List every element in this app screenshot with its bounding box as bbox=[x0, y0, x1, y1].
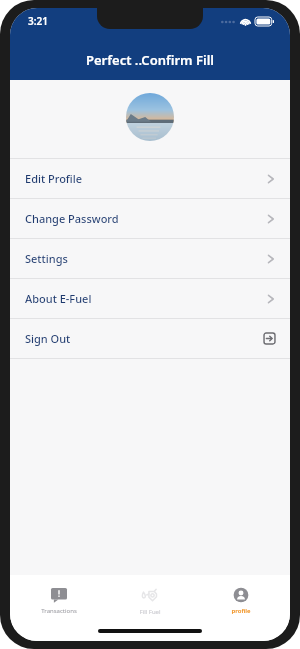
button[interactable]: Profile bbox=[199, 575, 283, 627]
staticText: Settings bbox=[25, 251, 68, 266]
staticText: Change Password bbox=[25, 211, 119, 226]
button[interactable]: Fill Fuel bbox=[108, 575, 192, 627]
button[interactable]: Sign Out bbox=[10, 319, 290, 358]
other: Profile bbox=[233, 587, 249, 603]
staticText: profile bbox=[231, 607, 251, 615]
staticText: About E-Fuel bbox=[25, 291, 92, 306]
button[interactable]: Edit Profile bbox=[10, 159, 290, 198]
staticText: Perfect ..Confirm Fill bbox=[10, 51, 290, 69]
button[interactable]: Change Password bbox=[10, 199, 290, 238]
other: Transactions bbox=[51, 587, 67, 603]
staticText: Fill Fuel bbox=[139, 608, 161, 616]
button[interactable]: About E-Fuel bbox=[10, 279, 290, 318]
button[interactable]: Transactions bbox=[17, 575, 101, 627]
staticText: Sign Out bbox=[25, 331, 71, 346]
staticText: Edit Profile bbox=[25, 171, 83, 186]
staticText: 3:21 bbox=[28, 14, 48, 28]
other: Fill Fuel bbox=[141, 586, 159, 604]
button[interactable]: Settings bbox=[10, 239, 290, 278]
other: Sign Out bbox=[263, 332, 276, 345]
staticText: Transactions bbox=[41, 607, 77, 615]
